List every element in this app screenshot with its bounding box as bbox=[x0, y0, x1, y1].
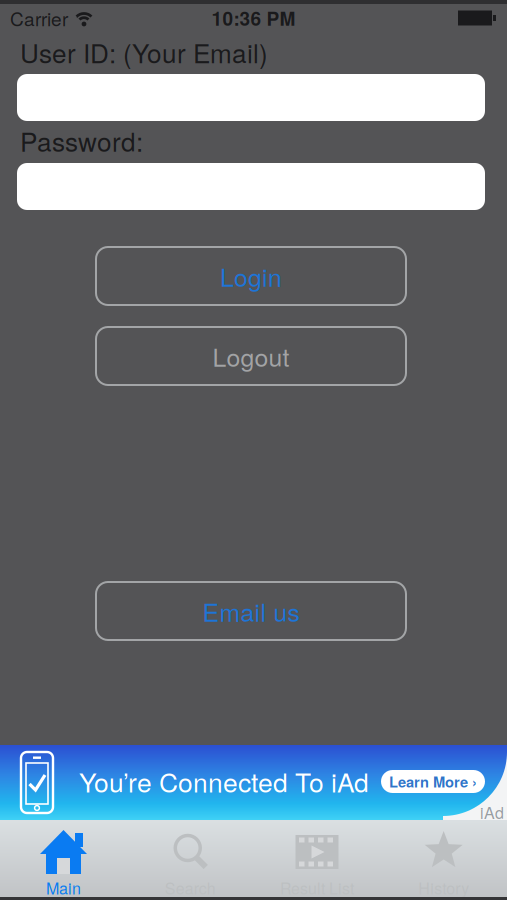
staticText: iAd bbox=[480, 800, 504, 823]
button[interactable]: Login bbox=[96, 247, 406, 305]
staticText: Main bbox=[46, 876, 81, 899]
staticText: Email us bbox=[202, 593, 299, 629]
button[interactable]: Password bbox=[17, 163, 485, 210]
staticText: 10:36 PM bbox=[211, 4, 295, 32]
staticText: History bbox=[418, 876, 469, 899]
button[interactable]: History bbox=[380, 820, 507, 897]
staticText: Search bbox=[165, 876, 216, 899]
staticText: Password: bbox=[20, 122, 143, 159]
button[interactable]: Main bbox=[0, 820, 127, 897]
button[interactable]: Logout bbox=[96, 327, 406, 385]
staticText: Login bbox=[220, 258, 282, 294]
staticText: Learn More › bbox=[389, 771, 477, 792]
staticText: You’re Connected To iAd bbox=[79, 762, 369, 800]
staticText: Carrier bbox=[10, 4, 68, 32]
button[interactable]: Search bbox=[127, 820, 254, 897]
button[interactable]: Learn More › bbox=[381, 770, 485, 793]
staticText: Logout bbox=[212, 338, 289, 374]
staticText: Result List bbox=[280, 876, 354, 899]
button[interactable]: Email us bbox=[96, 582, 406, 640]
staticText: User ID: (Your Email) bbox=[20, 33, 268, 71]
button[interactable]: Result List bbox=[253, 820, 380, 897]
button[interactable]: User ID bbox=[17, 74, 485, 121]
